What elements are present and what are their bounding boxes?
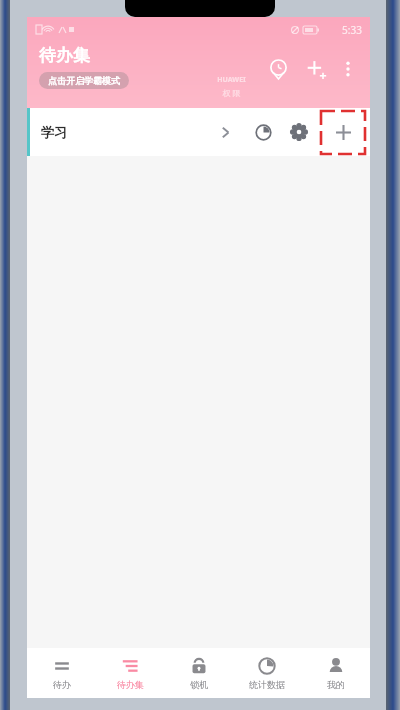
button[interactable]: 我的 — [302, 648, 370, 698]
button[interactable]: 点击开启学霸模式 — [39, 72, 129, 89]
staticText: 待办集 — [39, 45, 90, 66]
staticText: 5:33 — [342, 23, 362, 37]
button[interactable]: Statistics — [246, 115, 280, 149]
staticText: HUAWEI — [217, 75, 246, 85]
staticText: 我的 — [327, 679, 345, 690]
staticText: 待办集 — [117, 679, 144, 690]
button[interactable]: 统计数据 — [233, 648, 301, 698]
staticText: 点击开启学霸模式 — [48, 75, 120, 86]
staticText: 锁机 — [190, 679, 208, 690]
staticText: 统计数据 — [249, 679, 285, 690]
button[interactable]: 待办集 — [96, 648, 164, 698]
button[interactable]: Add task — [320, 110, 366, 155]
button[interactable]: More options — [334, 55, 362, 83]
button[interactable]: 锁机 — [165, 648, 233, 698]
button[interactable]: Reminder location — [262, 53, 294, 85]
button[interactable]: Settings — [282, 115, 316, 149]
staticText: 学习 — [41, 124, 67, 140]
button[interactable]: 待办 — [28, 648, 96, 698]
staticText: 待办 — [53, 679, 71, 690]
button[interactable]: Add — [300, 53, 332, 85]
button[interactable]: Expand — [208, 115, 242, 149]
staticText: 权 限 — [222, 87, 241, 98]
button[interactable]: 学习 — [27, 108, 370, 156]
